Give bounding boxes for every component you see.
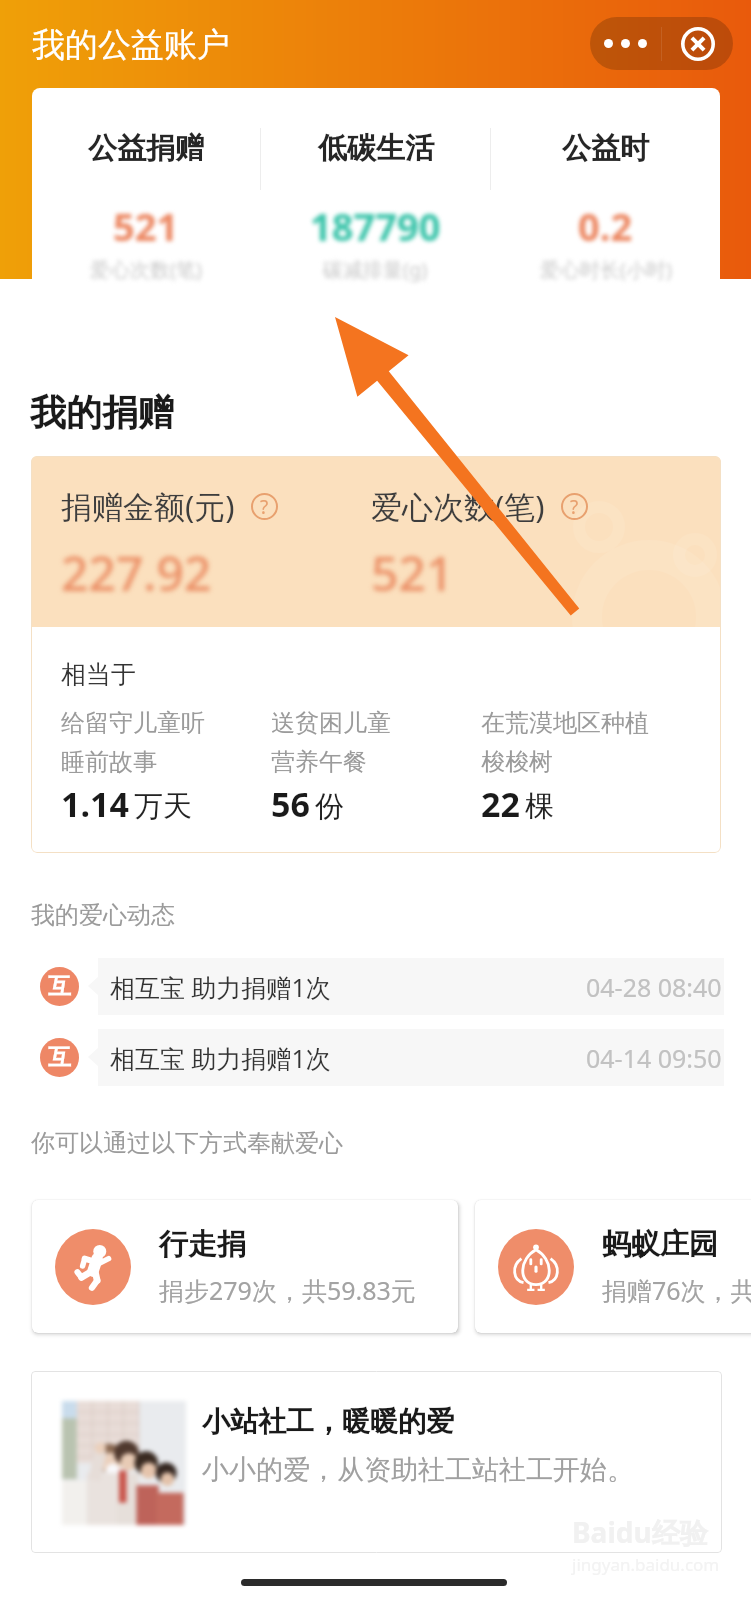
staticText: 56 — [271, 781, 310, 827]
button[interactable]: 低碳生活 — [261, 88, 490, 327]
staticText: 相互宝 助力捐赠1次 — [110, 970, 331, 1004]
staticText: 份 — [315, 788, 344, 825]
staticText: 我的爱心动态 — [31, 900, 175, 930]
staticText: 187790 — [310, 200, 441, 252]
staticText: 公益时 — [562, 130, 649, 167]
staticText: 棵 — [525, 788, 554, 825]
staticText: 公益捐赠 — [88, 130, 204, 167]
staticText: 营养午餐 — [271, 747, 367, 777]
staticText: 相互宝 助力捐赠1次 — [110, 1041, 331, 1075]
button[interactable]: 互 — [0, 1029, 751, 1086]
staticText: 送贫困儿童 — [271, 708, 391, 738]
staticText: 给留守儿童听 — [61, 708, 205, 738]
button[interactable]: 公益捐赠 — [32, 88, 260, 327]
button[interactable]: More options — [590, 17, 661, 70]
staticText: 捐赠金额(元) — [61, 485, 235, 527]
staticText: 碳减排量(g) — [323, 256, 428, 283]
staticText: 爱心次数(笔) — [371, 485, 545, 527]
staticText: 互 — [48, 972, 71, 1001]
staticText: 04-28 08:40 — [586, 970, 722, 1004]
staticText: 我的公益账户 — [32, 24, 230, 66]
staticText: 你可以通过以下方式奉献爱心 — [31, 1128, 343, 1158]
button[interactable]: 行走捐 — [32, 1200, 458, 1333]
staticText: 梭梭树 — [481, 747, 553, 777]
button[interactable]: 蚂蚁庄园 — [475, 1200, 751, 1333]
staticText: 22 — [481, 781, 520, 827]
staticText: Baidu经验 — [572, 1513, 708, 1551]
staticText: 爱心次数(笔) — [90, 256, 202, 283]
staticText: 行走捐 — [159, 1226, 246, 1263]
staticText: 捐步279次，共59.83元 — [159, 1273, 416, 1307]
staticText: ? — [570, 494, 579, 520]
staticText: 在荒漠地区种植 — [481, 708, 649, 738]
staticText: ? — [260, 494, 269, 520]
staticText: 521 — [113, 200, 179, 252]
staticText: 捐赠76次，共12.5元 — [602, 1273, 751, 1307]
button[interactable]: 公益时 — [491, 88, 720, 327]
staticText: 小小的爱，从资助社工站社工开始。 — [202, 1453, 634, 1487]
staticText: 爱心时长(小时) — [540, 256, 672, 283]
staticText: 521 — [371, 540, 454, 605]
button[interactable]: 互 — [0, 958, 751, 1015]
staticText: 小站社工，暖暖的爱 — [202, 1404, 454, 1439]
staticText: 1.14 — [61, 781, 129, 827]
staticText: 蚂蚁庄园 — [602, 1226, 718, 1263]
staticText: 我的捐赠 — [30, 390, 174, 435]
staticText: 227.92 — [61, 540, 212, 605]
button[interactable]: Close — [662, 17, 733, 70]
button[interactable]: 小站社工，暖暖的爱 — [31, 1371, 722, 1553]
staticText: 相当于 — [61, 659, 136, 690]
staticText: 0.2 — [578, 200, 633, 252]
button[interactable]: 捐赠金额(元) — [31, 456, 721, 853]
staticText: 万天 — [134, 788, 192, 825]
staticText: 低碳生活 — [318, 130, 434, 167]
staticText: 互 — [48, 1043, 71, 1072]
staticText: 04-14 09:50 — [586, 1041, 722, 1075]
staticText: 睡前故事 — [61, 747, 157, 777]
staticText: jingyan.baidu.com — [572, 1553, 720, 1576]
